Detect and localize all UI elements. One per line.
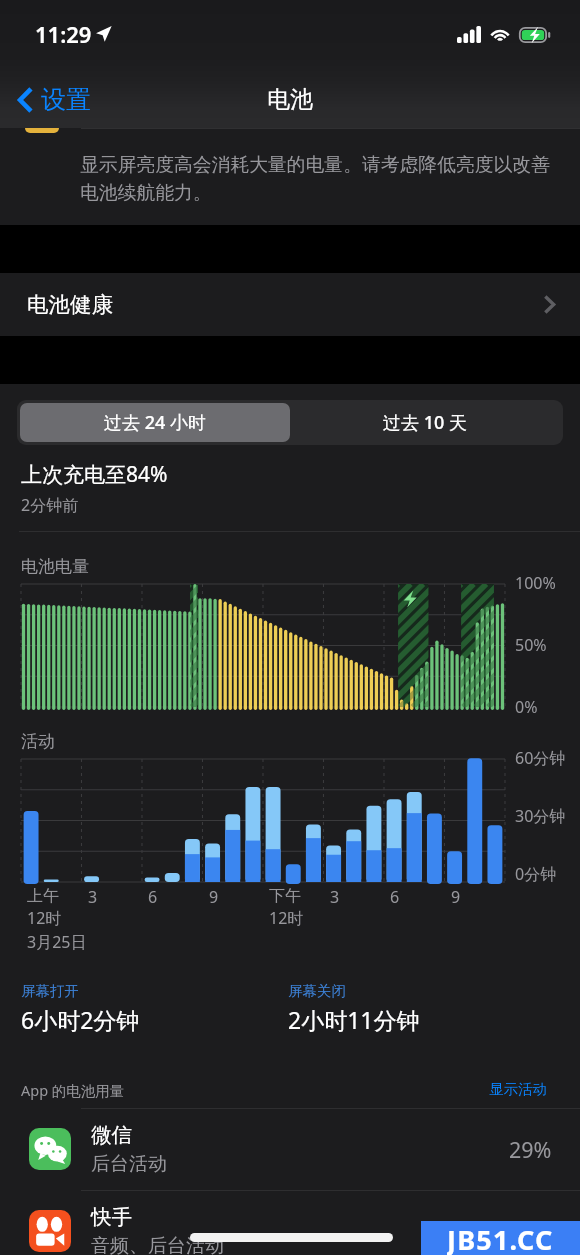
staticText: 6	[390, 886, 400, 908]
staticText: JB51.CC	[447, 1221, 554, 1255]
staticText: 电池电量	[21, 556, 89, 577]
staticText: 上午	[27, 886, 59, 906]
staticText: 9	[451, 886, 461, 908]
staticText: 100%	[515, 572, 556, 594]
staticText: 设置	[41, 84, 91, 115]
staticText: 12时	[269, 907, 304, 929]
staticText: 上次充电至84%	[21, 460, 168, 489]
staticText: 3	[88, 886, 98, 908]
staticText: 电池	[267, 85, 313, 114]
staticText: 2小时11分钟	[288, 1004, 420, 1035]
staticText: 60分钟	[515, 747, 566, 769]
staticText: 音频、后台活动	[91, 1234, 224, 1255]
staticText: 3	[330, 886, 340, 908]
staticText: 显示活动	[489, 1080, 547, 1098]
staticText: 12时	[27, 907, 62, 929]
staticText: 0%	[515, 696, 538, 718]
staticText: 电池健康	[27, 291, 113, 318]
staticText: 29%	[509, 1135, 552, 1164]
staticText: 2分钟前	[21, 494, 79, 516]
staticText: 9	[209, 886, 219, 908]
button[interactable]: 快手	[0, 1190, 580, 1255]
staticText: 活动	[21, 731, 55, 752]
staticText: 6	[148, 886, 158, 908]
button[interactable]: 过去 24 小时	[20, 403, 290, 442]
staticText: 过去 24 小时	[104, 410, 206, 435]
button[interactable]: 过去 10 天	[290, 403, 560, 442]
button[interactable]: 微信	[0, 1108, 580, 1190]
staticText: 显示屏亮度高会消耗大量的电量。请考虑降低亮度以改善	[80, 153, 550, 177]
staticText: 6小时2分钟	[21, 1004, 140, 1035]
staticText: 3月25日	[27, 931, 87, 953]
staticText: 微信	[91, 1122, 132, 1148]
staticText: 下午	[269, 886, 301, 906]
staticText: 50%	[515, 634, 547, 656]
staticText: 快手	[91, 1204, 132, 1230]
staticText: 屏幕关闭	[288, 982, 346, 1000]
staticText: 11:29	[35, 19, 92, 49]
staticText: 30分钟	[515, 805, 566, 827]
staticText: 电池续航能力。	[80, 181, 212, 205]
button[interactable]: 显示活动	[489, 1080, 547, 1098]
staticText: 0分钟	[515, 863, 557, 885]
staticText: 后台活动	[91, 1152, 167, 1176]
staticText: 过去 10 天	[383, 410, 467, 435]
staticText: App 的电池用量	[21, 1080, 125, 1100]
staticText: 屏幕打开	[21, 982, 79, 1000]
button[interactable]: 设置	[14, 78, 94, 121]
button[interactable]: 电池健康	[0, 273, 580, 336]
